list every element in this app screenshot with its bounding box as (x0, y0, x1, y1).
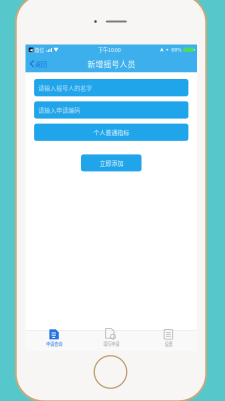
button[interactable]: 申请查询 (25, 330, 83, 351)
staticText: 88% (171, 47, 182, 53)
button[interactable]: 填写申请 (83, 330, 140, 351)
button[interactable]: 个人普通指标 (34, 124, 188, 141)
staticText: 返回 (35, 59, 47, 68)
staticText: 下午10:00 (98, 46, 121, 54)
staticText: 请输入申请编码 (38, 106, 80, 114)
staticText: 立即添加 (99, 159, 123, 167)
button[interactable]: 返回 (25, 55, 51, 72)
staticText: 微信 (34, 46, 44, 53)
button[interactable]: 请输入摇号人的名字 (34, 79, 188, 96)
staticText: ◀ (29, 47, 32, 52)
button[interactable]: 立即添加 (81, 154, 141, 171)
staticText: 新增摇号人员 (87, 58, 135, 70)
staticText: 个人普通指标 (93, 128, 129, 137)
staticText: 设置 (164, 340, 172, 347)
staticText: 请输入摇号人的名字 (38, 83, 92, 92)
staticText: ✦ (165, 47, 169, 52)
staticText: 填写申请 (103, 340, 119, 347)
button[interactable]: 请输入申请编码 (34, 101, 188, 119)
button[interactable]: 设置 (140, 330, 197, 351)
staticText: 申请查询 (46, 340, 62, 347)
